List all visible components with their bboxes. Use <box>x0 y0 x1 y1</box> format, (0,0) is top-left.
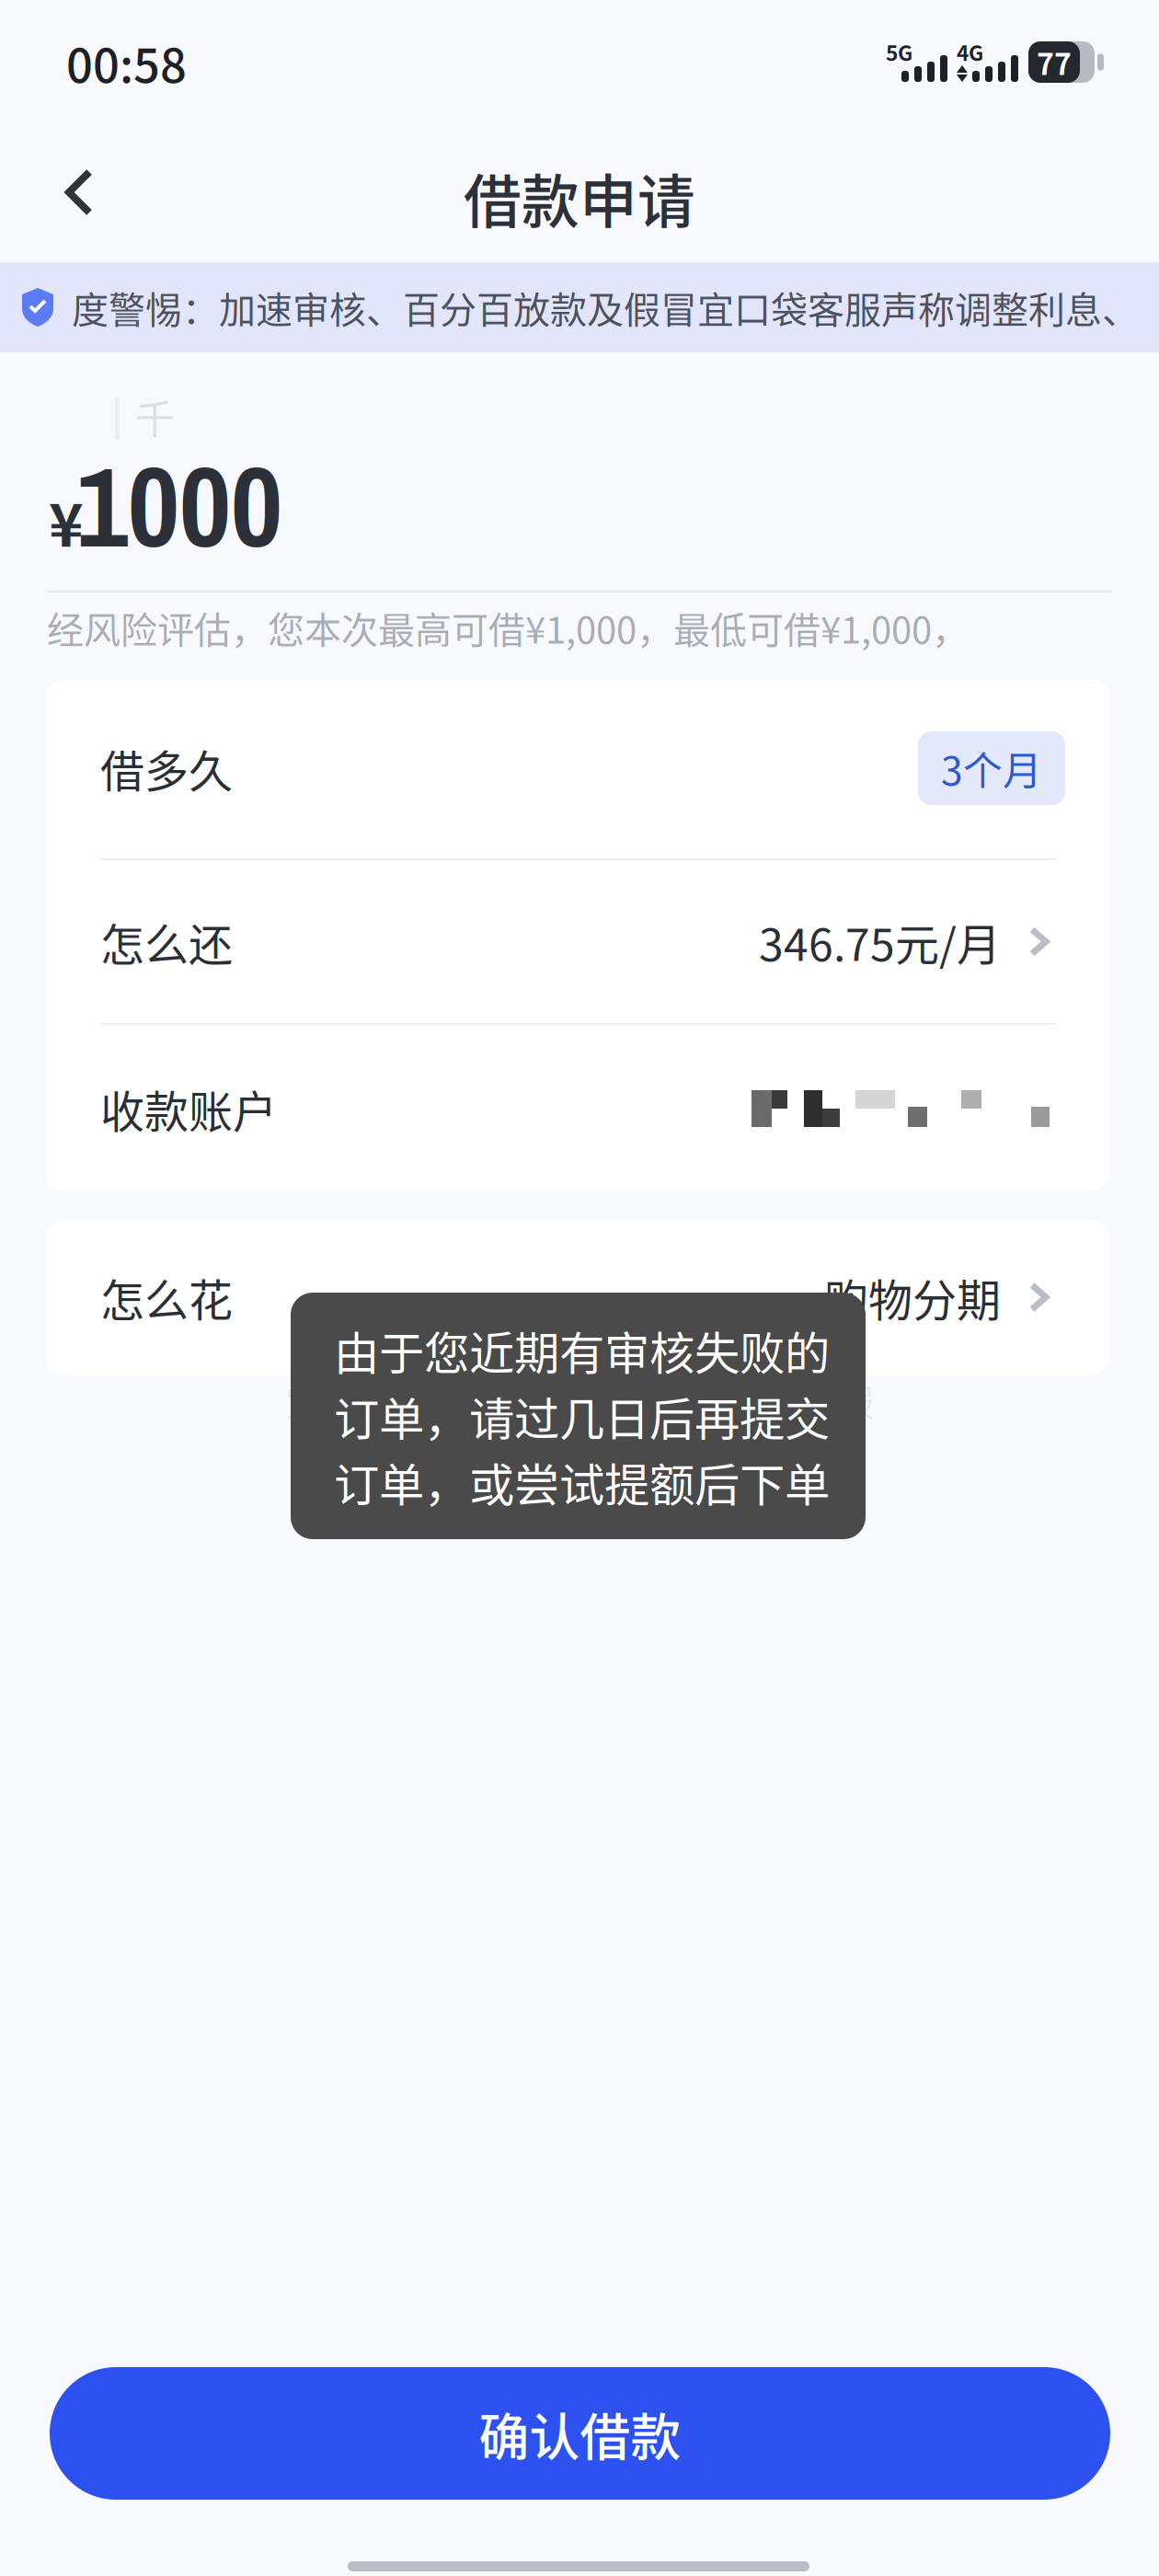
staticText: 宜口袋号，若不符合可联系人工客服 <box>285 1374 874 1427</box>
staticText: 怎么还 <box>100 910 233 974</box>
staticText: 4G <box>957 37 983 67</box>
staticText: 00:58 <box>66 29 187 96</box>
button[interactable]: 确认借款 <box>50 2367 1110 2500</box>
staticText: 购物分期 <box>824 1265 1001 1329</box>
staticText: 订单，或尝试提额后下单 <box>334 1449 830 1514</box>
button[interactable]: 返回 <box>26 139 132 246</box>
staticText: 77 <box>1037 41 1072 83</box>
staticText: 借款申请 <box>464 155 695 239</box>
staticText: 346.75元/月 <box>759 910 1001 974</box>
staticText: 度警惕：加速审核、百分百放款及假冒宜口袋客服声称调整利息、 <box>72 281 1139 334</box>
button[interactable]: 怎么花 <box>46 1220 1110 1374</box>
staticText: 借多久 <box>100 736 233 800</box>
staticText: 收款账户 <box>100 1077 277 1141</box>
button[interactable]: 借多久 <box>46 678 1110 858</box>
staticText: 3个月 <box>941 740 1042 797</box>
staticText: ¥ <box>49 478 84 564</box>
staticText: 怎么花 <box>100 1265 233 1329</box>
staticText: 订单，请过几日后再提交 <box>334 1383 830 1449</box>
staticText: 1000 <box>76 430 282 582</box>
staticText: 5G <box>886 37 912 67</box>
staticText: 经风险评估，您本次最高可借¥1,000，最低可借¥1,000， <box>47 601 969 654</box>
button[interactable]: 怎么还 <box>46 860 1110 1023</box>
button[interactable]: 收款账户 <box>46 1025 1110 1192</box>
staticText: 千 <box>135 388 175 445</box>
staticText: 由于您近期有审核失败的 <box>334 1317 830 1383</box>
staticText: 确认借款 <box>479 2397 681 2470</box>
